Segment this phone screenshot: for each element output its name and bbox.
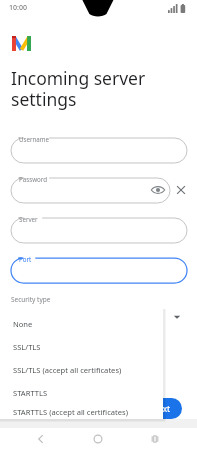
other: Gmail [12, 36, 31, 51]
staticText: SSL/TLS (accept all certificates) [13, 365, 122, 375]
staticText: Next [152, 403, 171, 414]
staticText: STARTTLS (accept all certificates) [13, 407, 128, 417]
staticText: 10:00 [9, 3, 27, 13]
button[interactable]: Recent apps [148, 432, 162, 446]
button[interactable]: Password [11, 178, 170, 203]
staticText: STARTTLS [13, 388, 48, 398]
button[interactable]: SSL/TLS (accept all certificates) [0, 358, 163, 381]
button[interactable]: Port [11, 258, 187, 283]
button[interactable]: Next [141, 398, 182, 419]
staticText: Username [19, 135, 50, 143]
button[interactable]: Back [34, 432, 48, 446]
staticText: None [13, 319, 33, 329]
staticText: Incoming server settings [11, 66, 146, 111]
button[interactable]: STARTTLS [0, 381, 163, 404]
button[interactable]: Home [91, 432, 105, 446]
staticText: Server [19, 215, 38, 223]
button[interactable]: Clear [174, 183, 188, 197]
staticText: Password [19, 175, 47, 183]
button[interactable]: Server [11, 218, 187, 243]
button[interactable]: None [0, 312, 163, 335]
staticText: Security type [11, 295, 51, 304]
button[interactable]: STARTTLS (accept all certificates) [0, 404, 163, 419]
staticText: SSL/TLS [13, 342, 41, 352]
button[interactable]: Username [11, 138, 187, 163]
button[interactable]: Expand security type [172, 312, 182, 322]
button[interactable]: Show password [150, 182, 166, 198]
staticText: Port [19, 255, 32, 263]
button[interactable]: SSL/TLS [0, 335, 163, 358]
